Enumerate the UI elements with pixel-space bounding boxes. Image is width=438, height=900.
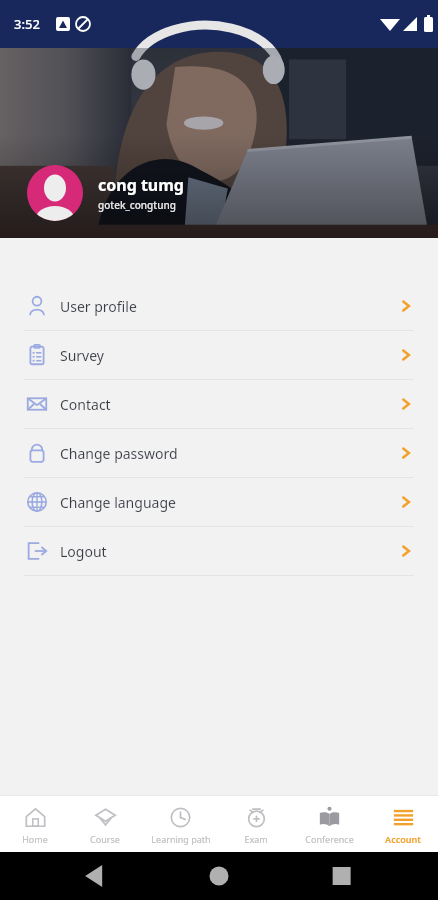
staticText: 3:52 — [14, 15, 40, 33]
staticText: Account — [385, 833, 421, 845]
staticText: Learning path — [151, 833, 211, 845]
staticText: Change password — [60, 444, 178, 463]
staticText: Course — [90, 833, 120, 845]
button[interactable]: Learning path — [140, 795, 221, 852]
staticText: Home — [22, 833, 48, 845]
staticText: User profile — [60, 297, 137, 316]
button[interactable]: Exam — [221, 795, 291, 852]
button[interactable]: Home — [0, 795, 70, 852]
staticText: Contact — [60, 395, 111, 414]
button[interactable]: Account — [368, 795, 438, 852]
staticText: Survey — [60, 346, 104, 365]
button[interactable]: Survey — [0, 331, 438, 379]
button[interactable]: Change password — [0, 429, 438, 477]
staticText: Change language — [60, 493, 176, 512]
button[interactable]: Contact — [0, 380, 438, 428]
button[interactable]: Course — [70, 795, 140, 852]
staticText: cong tumg — [98, 174, 184, 196]
staticText: gotek_congtung — [98, 198, 176, 212]
button[interactable]: User profile — [0, 282, 438, 330]
staticText: Conference — [305, 833, 354, 845]
button[interactable]: Conference — [291, 795, 368, 852]
staticText: Logout — [60, 542, 107, 561]
staticText: Exam — [244, 833, 268, 845]
button[interactable]: Change language — [0, 478, 438, 526]
button[interactable]: Logout — [0, 527, 438, 575]
